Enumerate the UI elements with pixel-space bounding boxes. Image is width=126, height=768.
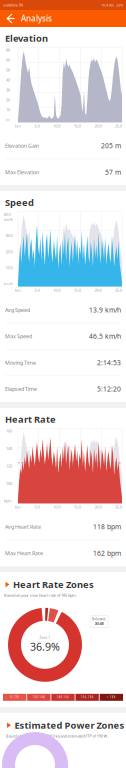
staticText: 140 (6, 446, 12, 451)
staticText: 20.0 (94, 123, 101, 129)
staticText: 20.0 (94, 287, 101, 293)
staticText: 20 (6, 97, 10, 102)
staticText: 100 (6, 481, 12, 486)
button[interactable]: 148-166 (51, 694, 75, 701)
staticText: 166-184 (81, 696, 94, 699)
staticText: 25.0 (115, 123, 122, 129)
staticText: 148-166 (56, 696, 69, 699)
staticText: Max Heart Rate (5, 550, 43, 557)
staticText: 10.0 (53, 123, 60, 129)
staticText: 130-148 (32, 696, 45, 699)
staticText: 15.0 (74, 287, 81, 293)
staticText: 205 m (101, 141, 121, 150)
staticText: 15.0 (74, 504, 81, 510)
staticText: > 184 (107, 696, 116, 699)
staticText: 120 (6, 463, 12, 468)
staticText: 30 (6, 87, 10, 92)
staticText: 10.0 (53, 504, 60, 510)
staticText: km (15, 287, 21, 293)
staticText: 30.0 (5, 233, 12, 238)
staticText: Avg Speed (5, 306, 30, 313)
staticText: 40.0 km/h (3, 211, 12, 222)
staticText: Based on your weight of 84.0 kg and esti… (5, 733, 108, 738)
staticText: 5.0 (35, 504, 40, 510)
staticText: Heart Rate (5, 413, 56, 425)
staticText: m (6, 117, 10, 122)
staticText: Analysis (21, 13, 52, 24)
staticText: Moving Time (5, 359, 36, 366)
staticText: 0-130 (10, 696, 19, 699)
staticText: Endurance (92, 617, 106, 621)
staticText: 80 (6, 47, 10, 53)
staticText: 5:12:20 (97, 385, 121, 393)
staticText: Max Elevation (5, 169, 39, 176)
staticText: 2:14:53 (97, 358, 121, 367)
staticText: Based on your max heart rate of 185 bpm. (4, 592, 77, 598)
staticText: Estimated Power Zones (14, 719, 124, 731)
staticText: Avg Heart Rate (5, 523, 41, 530)
staticText: Elevation (5, 32, 48, 44)
staticText: Max Speed (5, 333, 32, 340)
staticText: 10.4 K/s 33% (101, 2, 123, 8)
staticText: vodafone IN (3, 2, 23, 8)
staticText: 20.0 (5, 249, 12, 254)
staticText: 00:48 (94, 621, 103, 626)
staticText: 15.0 (74, 123, 81, 129)
staticText: Zone 1 (39, 636, 50, 639)
staticText: 25.0 (115, 287, 122, 293)
staticText: 60 (6, 57, 10, 63)
staticText: 40 (6, 77, 10, 83)
staticText: Heart Rate Zones (13, 578, 94, 590)
staticText: Elevation Gain (5, 142, 39, 149)
staticText: km (15, 504, 21, 510)
staticText: 25.0 (115, 504, 122, 510)
staticText: 5.0 (35, 287, 40, 293)
button[interactable]: 166-184 (75, 694, 99, 701)
staticText: km/h (3, 281, 12, 286)
button[interactable]: 0-130 (3, 694, 26, 701)
staticText: 57 m (105, 168, 121, 177)
staticText: 118 bpm (93, 522, 121, 531)
staticText: 50 (6, 67, 10, 73)
staticText: 13.9 km/h (89, 305, 121, 314)
staticText: km (15, 123, 21, 129)
staticText: 162 bpm (93, 549, 121, 558)
staticText: 20.0 (94, 504, 101, 510)
staticText: bpm (4, 498, 12, 503)
staticText: 10.0 (53, 287, 60, 293)
staticText: 5.0 (35, 123, 40, 129)
staticText: 36.9% (30, 639, 60, 654)
staticText: Elapsed Time (5, 385, 37, 393)
staticText: 160 (6, 428, 12, 434)
staticText: 46.5 km/h (89, 332, 121, 341)
staticText: 10.0 (5, 265, 12, 270)
staticText: Speed (5, 196, 34, 208)
button[interactable]: > 184 (100, 694, 123, 701)
button[interactable]: Back (2, 10, 19, 27)
button[interactable]: 130-148 (27, 694, 51, 701)
staticText: 10 (6, 107, 10, 112)
